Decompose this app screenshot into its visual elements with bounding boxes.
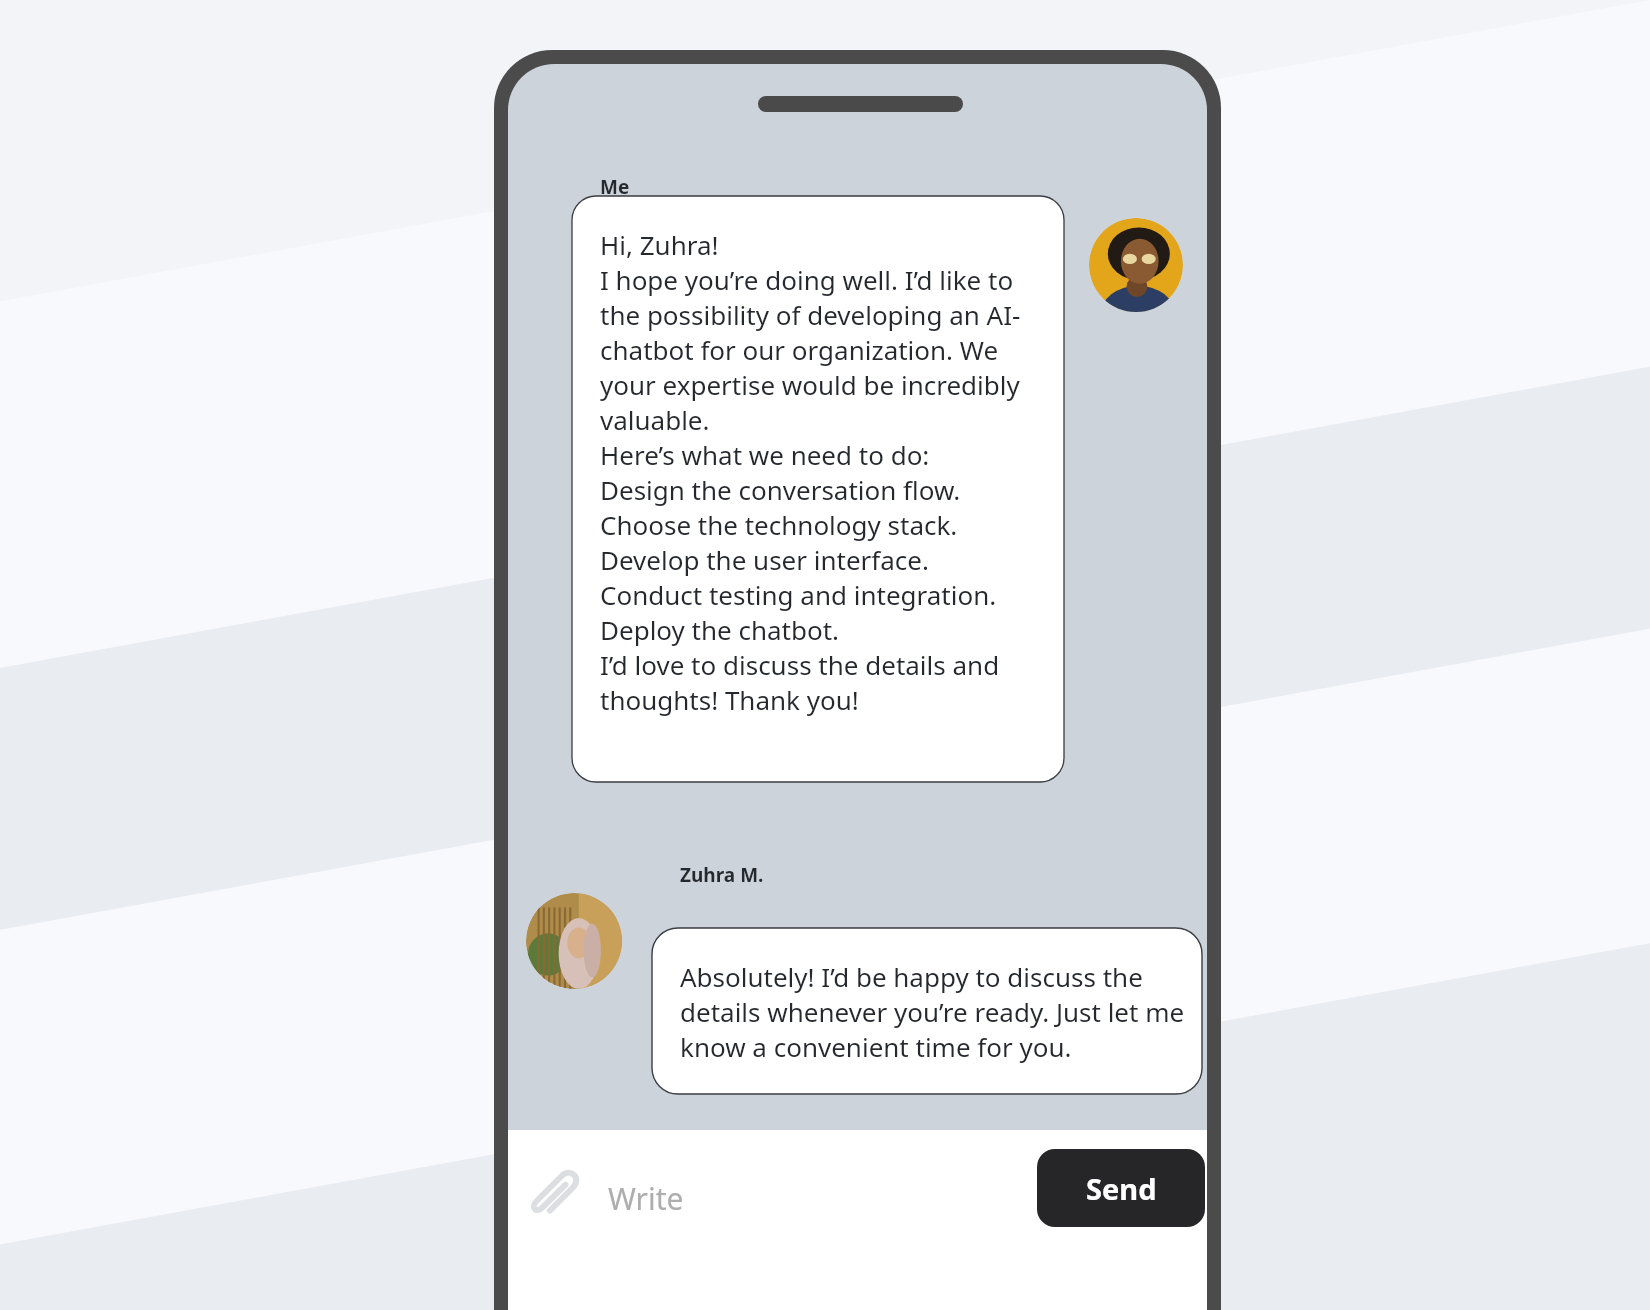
staticText: thoughts! Thank you! bbox=[600, 682, 859, 717]
staticText: chatbot for our organization. We believe bbox=[600, 332, 1050, 367]
button[interactable]: Attach file bbox=[518, 1160, 588, 1230]
staticText: Choose the technology stack. bbox=[600, 507, 958, 542]
staticText: I’d love to discuss the details and hear… bbox=[600, 647, 1050, 682]
staticText: I hope you’re doing well. I’d like to di… bbox=[600, 262, 1050, 297]
staticText: Here’s what we need to do: bbox=[600, 437, 930, 472]
staticText: the possibility of developing an AI-base… bbox=[600, 297, 1050, 332]
button[interactable]: Send bbox=[1037, 1149, 1205, 1227]
button[interactable] bbox=[572, 196, 1064, 782]
staticText: details whenever you’re ready. Just let … bbox=[680, 994, 1185, 1029]
staticText: valuable. bbox=[600, 402, 710, 437]
staticText: Write bbox=[608, 1178, 684, 1219]
staticText: Deploy the chatbot. bbox=[600, 612, 840, 647]
staticText: Design the conversation flow. bbox=[600, 472, 961, 507]
staticText: Send bbox=[1086, 1169, 1157, 1208]
staticText: Hi, Zuhra! bbox=[600, 227, 719, 262]
staticText: Develop the user interface. bbox=[600, 542, 929, 577]
staticText: Me bbox=[600, 174, 630, 200]
staticText: Conduct testing and integration. bbox=[600, 577, 997, 612]
button[interactable] bbox=[652, 928, 1202, 1094]
staticText: Zuhra M. bbox=[680, 862, 764, 888]
staticText: your expertise would be incredibly bbox=[600, 367, 1020, 402]
staticText: know a convenient time for you. bbox=[680, 1029, 1072, 1064]
staticText: Absolutely! I’d be happy to discuss the bbox=[680, 959, 1143, 994]
